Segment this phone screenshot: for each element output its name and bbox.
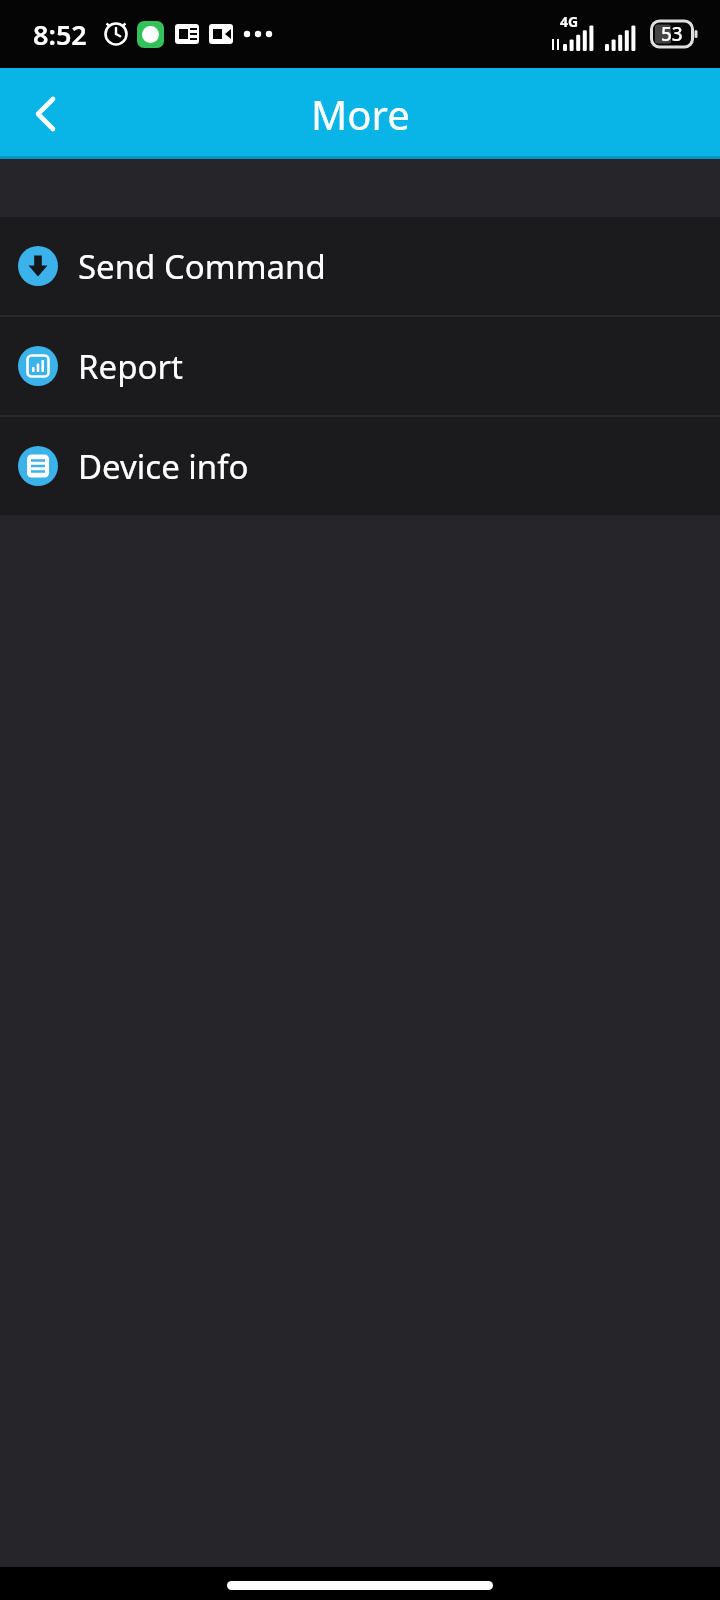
staticText: More — [311, 87, 410, 141]
button[interactable]: Send Command — [0, 217, 720, 315]
staticText: 8:52 — [33, 16, 87, 53]
staticText: 53 — [661, 21, 683, 47]
button[interactable]: Report — [0, 317, 720, 415]
staticText: Report — [78, 344, 183, 389]
staticText: Device info — [78, 444, 249, 489]
staticText: Send Command — [78, 244, 326, 289]
button[interactable]: Device info — [0, 417, 720, 515]
button[interactable] — [21, 89, 71, 139]
staticText: 4G — [560, 12, 579, 31]
